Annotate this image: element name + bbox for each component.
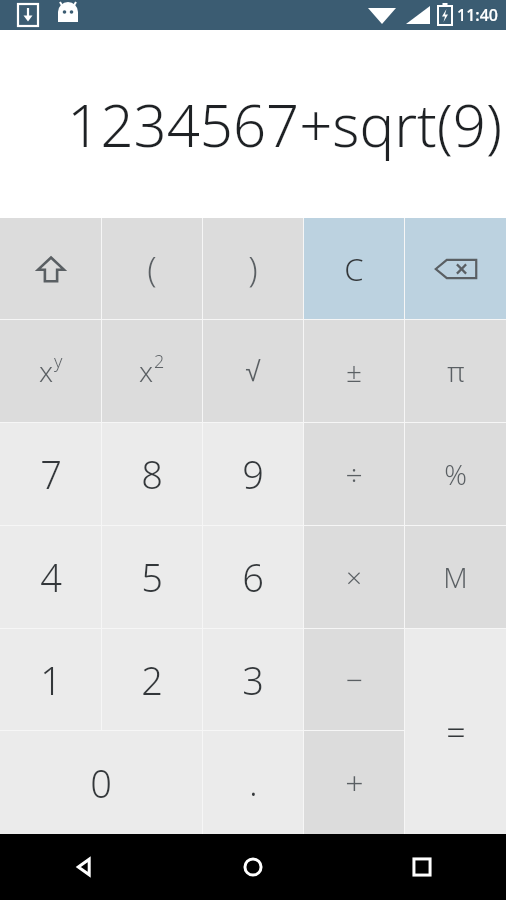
staticText: ÷ <box>345 454 363 495</box>
button[interactable]: Home <box>168 834 337 900</box>
button[interactable]: = <box>405 629 506 834</box>
staticText: M <box>443 558 468 596</box>
button[interactable]: M <box>405 526 506 628</box>
staticText: × <box>346 558 362 596</box>
staticText: x <box>39 352 54 390</box>
staticText: C <box>344 248 364 290</box>
staticText: − <box>345 659 363 700</box>
button[interactable]: C <box>304 218 404 319</box>
staticText: √ <box>245 356 261 387</box>
button[interactable]: 0 <box>0 731 202 834</box>
button[interactable]: % <box>405 423 506 525</box>
staticText: 4 <box>40 551 62 603</box>
button[interactable]: 8 <box>102 423 202 525</box>
staticText: 0 <box>90 757 112 809</box>
staticText: % <box>444 455 467 493</box>
button[interactable]: 7 <box>0 423 101 525</box>
button[interactable]: − <box>304 629 404 730</box>
button[interactable]: Shift <box>0 218 101 319</box>
staticText: ± <box>346 352 362 390</box>
staticText: y <box>54 349 63 374</box>
button[interactable]: 4 <box>0 526 101 628</box>
button[interactable]: 6 <box>203 526 303 628</box>
button[interactable]: ÷ <box>304 423 404 525</box>
staticText: 1234567+sqrt(9) <box>67 85 502 164</box>
button[interactable]: . <box>203 731 303 834</box>
button[interactable]: ± <box>304 320 404 422</box>
button[interactable]: x <box>102 320 202 422</box>
staticText: 11:40 <box>457 4 498 26</box>
staticText: 8 <box>141 448 163 500</box>
staticText: π <box>447 352 465 390</box>
staticText: . <box>249 760 258 806</box>
staticText: 2 <box>141 654 163 706</box>
button[interactable]: ( <box>102 218 202 319</box>
button[interactable]: 3 <box>203 629 303 730</box>
button[interactable]: × <box>304 526 404 628</box>
button[interactable]: 9 <box>203 423 303 525</box>
staticText: = <box>446 709 466 755</box>
staticText: 7 <box>40 448 62 500</box>
button[interactable]: π <box>405 320 506 422</box>
button[interactable]: 1 <box>0 629 101 730</box>
button[interactable]: Recent apps <box>337 834 506 900</box>
staticText: 2 <box>154 349 165 374</box>
button[interactable]: 2 <box>102 629 202 730</box>
staticText: ) <box>248 246 258 292</box>
staticText: 5 <box>141 551 163 603</box>
staticText: 9 <box>242 448 264 500</box>
button[interactable]: ) <box>203 218 303 319</box>
button[interactable]: x <box>0 320 101 422</box>
button[interactable]: + <box>304 731 404 834</box>
button[interactable]: Backspace <box>405 218 506 319</box>
staticText: x <box>139 352 154 390</box>
staticText: + <box>345 761 364 805</box>
staticText: 3 <box>242 654 264 706</box>
button[interactable]: Back <box>0 834 168 900</box>
staticText: ( <box>147 246 157 292</box>
button[interactable]: 5 <box>102 526 202 628</box>
button[interactable]: √ <box>203 320 303 422</box>
staticText: 1 <box>40 654 62 706</box>
staticText: 6 <box>242 551 264 603</box>
